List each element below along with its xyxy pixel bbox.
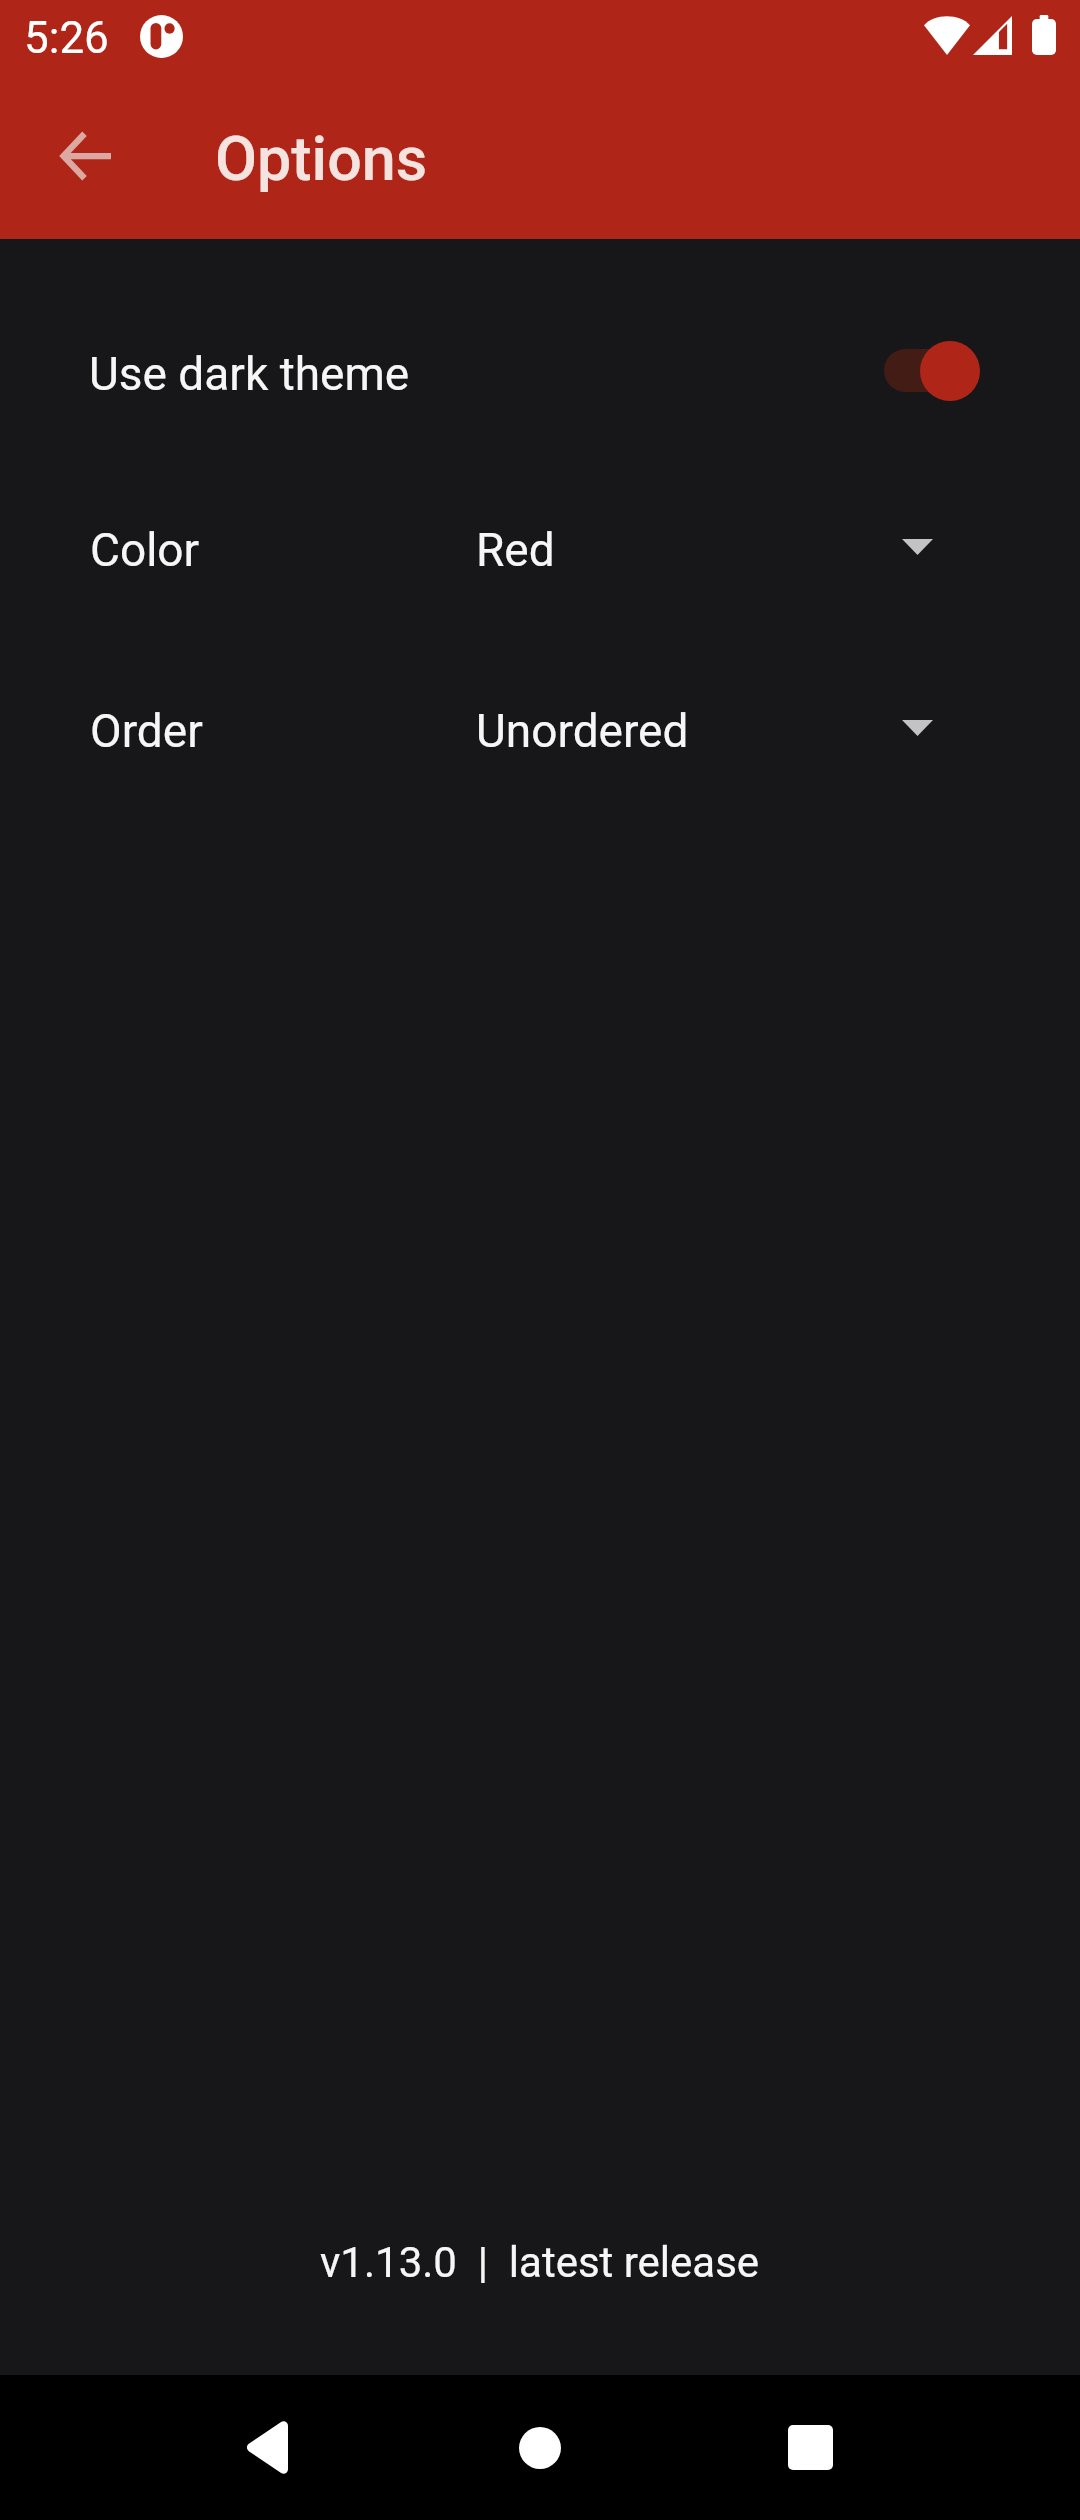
button[interactable]: Color [0, 470, 1080, 650]
staticText: Unordered [476, 704, 689, 758]
staticText: Color [90, 523, 200, 577]
staticText: 5:26 [24, 12, 109, 64]
button[interactable]: Navigate up [31, 101, 141, 211]
staticText: Use dark theme [89, 347, 410, 401]
button[interactable]: Order [0, 651, 1080, 831]
staticText: Red [476, 523, 555, 577]
button[interactable]: Recent apps [720, 2375, 900, 2520]
staticText: v1.13.0 | latest release [320, 2238, 760, 2287]
staticText: Order [90, 704, 203, 758]
button[interactable]: Home [450, 2375, 630, 2520]
staticText: Options [215, 123, 428, 194]
button[interactable]: Back [177, 2375, 357, 2520]
button[interactable]: Use dark theme [0, 286, 1080, 456]
